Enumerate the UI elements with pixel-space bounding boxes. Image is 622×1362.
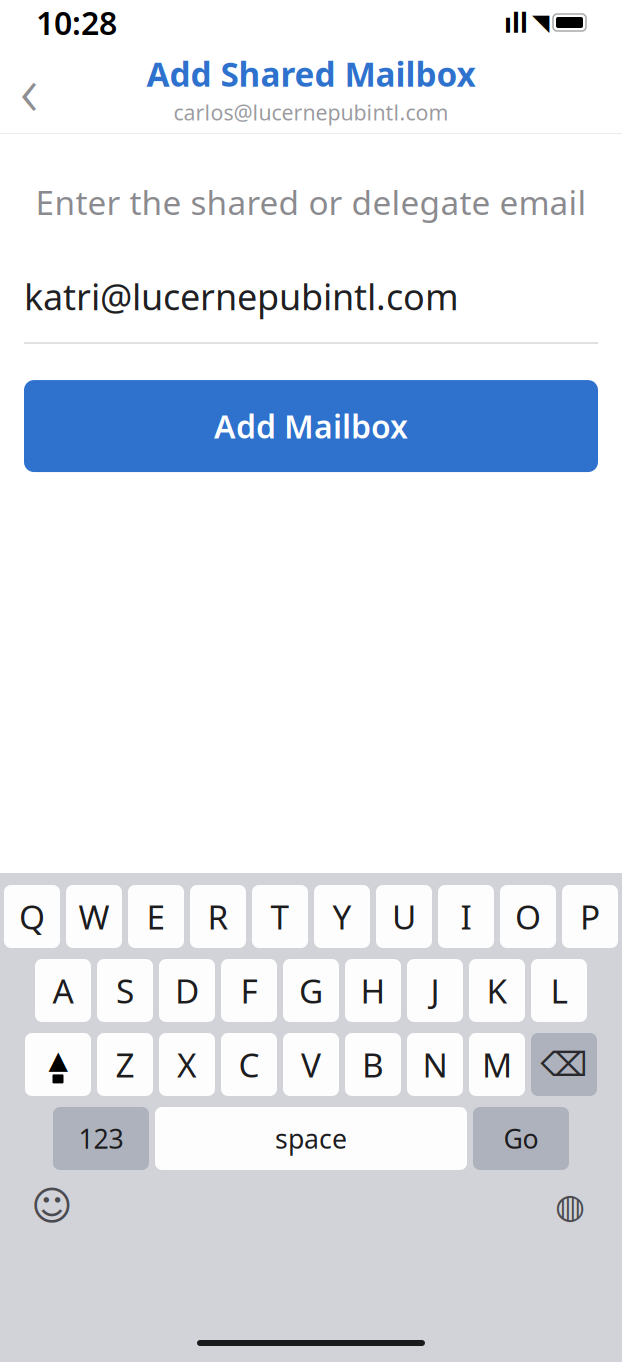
staticText: O	[515, 894, 541, 939]
button[interactable]: K	[469, 959, 525, 1022]
staticText: ◥	[532, 10, 549, 35]
button[interactable]: Add Mailbox	[24, 380, 598, 472]
button[interactable]: J	[407, 959, 463, 1022]
staticText: U	[392, 894, 416, 939]
staticText: Q	[19, 894, 45, 939]
button[interactable]: Q	[4, 885, 60, 948]
staticText: Go	[503, 1121, 538, 1156]
button[interactable]: Delete	[531, 1033, 597, 1096]
button[interactable]: E	[128, 885, 184, 948]
staticText: M	[482, 1042, 512, 1087]
button[interactable]: T	[252, 885, 308, 948]
button[interactable]: R	[190, 885, 246, 948]
staticText: katri@lucernepubintl.com	[24, 272, 459, 320]
staticText: 123	[78, 1121, 123, 1156]
staticText: Y	[332, 894, 351, 939]
button[interactable]: P	[562, 885, 618, 948]
staticText: B	[362, 1042, 384, 1087]
staticText: H	[360, 968, 385, 1013]
button[interactable]: D	[159, 959, 215, 1022]
button[interactable]: Go	[473, 1107, 569, 1170]
staticText: ⌫	[540, 1046, 587, 1083]
button[interactable]: I	[438, 885, 494, 948]
staticText: L	[550, 968, 567, 1013]
staticText: ▲	[48, 1046, 67, 1074]
button[interactable]: 123	[53, 1107, 149, 1170]
button[interactable]: C	[221, 1033, 277, 1096]
staticText: G	[299, 968, 323, 1013]
button[interactable]: W	[66, 885, 122, 948]
button[interactable]: F	[221, 959, 277, 1022]
staticText: W	[78, 894, 109, 939]
button[interactable]: M	[469, 1033, 525, 1096]
staticText: K	[486, 968, 507, 1013]
button[interactable]: V	[283, 1033, 339, 1096]
staticText: F	[240, 968, 257, 1013]
staticText: Enter the shared or delegate email	[35, 180, 586, 224]
staticText: S	[116, 968, 134, 1013]
staticText: R	[207, 894, 228, 939]
button[interactable]: Y	[314, 885, 370, 948]
staticText: ☺	[31, 1183, 73, 1229]
button[interactable]: G	[283, 959, 339, 1022]
staticText: Add Mailbox	[214, 405, 408, 447]
staticText: A	[52, 968, 73, 1013]
button[interactable]: Back	[0, 54, 58, 124]
staticText: 10:28	[36, 1, 117, 44]
button[interactable]: H	[345, 959, 401, 1022]
button[interactable]: A	[35, 959, 91, 1022]
button[interactable]: Z	[97, 1033, 153, 1096]
staticText: D	[175, 968, 199, 1013]
staticText: space	[275, 1121, 347, 1156]
staticText: E	[146, 894, 165, 939]
button[interactable]: space	[155, 1107, 467, 1170]
staticText: ‹	[20, 43, 38, 135]
button[interactable]: Shift	[25, 1033, 91, 1096]
staticText: ◍	[555, 1186, 585, 1226]
staticText: V	[301, 1042, 321, 1087]
button[interactable]: S	[97, 959, 153, 1022]
button[interactable]: B	[345, 1033, 401, 1096]
staticText: ıll	[504, 5, 528, 40]
staticText: Z	[115, 1042, 134, 1087]
button[interactable]: U	[376, 885, 432, 948]
staticText: Add Shared Mailbox	[146, 52, 475, 96]
staticText: I	[460, 894, 471, 939]
button[interactable]: Emoji	[24, 1178, 80, 1234]
staticText: X	[177, 1042, 197, 1087]
staticText: T	[270, 894, 289, 939]
button[interactable]: N	[407, 1033, 463, 1096]
button[interactable]: X	[159, 1033, 215, 1096]
staticText: C	[238, 1042, 259, 1087]
staticText: carlos@lucernepubintl.com	[173, 98, 448, 126]
button[interactable]: Dictate	[542, 1178, 598, 1234]
staticText: N	[422, 1042, 447, 1087]
staticText: P	[580, 894, 600, 939]
button[interactable]: O	[500, 885, 556, 948]
button[interactable]: L	[531, 959, 587, 1022]
staticText: J	[430, 968, 439, 1013]
